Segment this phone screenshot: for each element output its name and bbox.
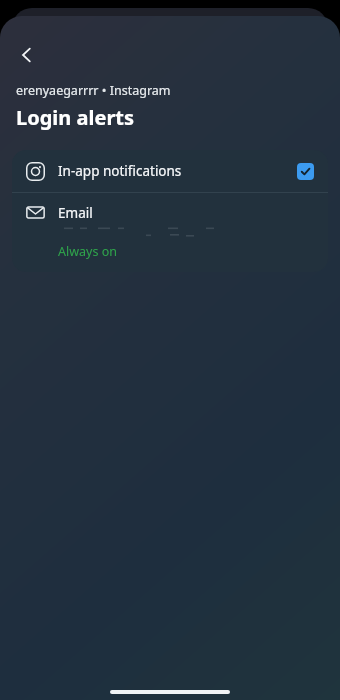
button[interactable]: Back — [6, 34, 48, 76]
staticText: Email — [58, 204, 93, 222]
staticText: erenyaegarrrr • Instagram — [16, 82, 171, 99]
staticText: Always on — [58, 243, 117, 260]
staticText: Login alerts — [16, 104, 135, 131]
staticText: In-app notifications — [58, 162, 182, 180]
button[interactable]: Email — [12, 193, 328, 272]
button[interactable]: In-app notifications — [12, 150, 328, 192]
